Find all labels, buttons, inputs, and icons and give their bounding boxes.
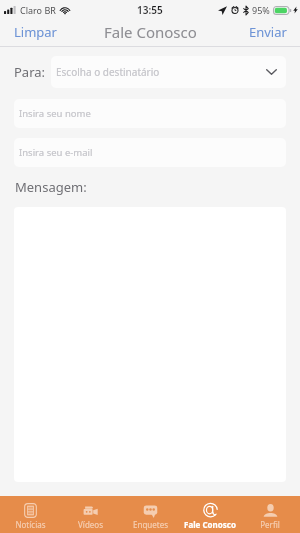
- staticText: Mensagem:: [15, 178, 87, 196]
- staticText: 95%: [252, 4, 270, 16]
- staticText: Notícias: [15, 519, 46, 530]
- staticText: Limpar: [14, 23, 57, 41]
- other: Expand recipient list: [266, 69, 277, 75]
- button[interactable]: Enquetes: [120, 496, 180, 533]
- staticText: Fale Conosco: [184, 519, 236, 530]
- staticText: Claro BR: [20, 4, 56, 16]
- staticText: Insira seu nome: [19, 107, 91, 120]
- button[interactable]: Notícias: [0, 496, 60, 533]
- staticText: Enquetes: [133, 519, 168, 530]
- button[interactable]: Limpar: [0, 19, 71, 45]
- staticText: Enviar: [249, 23, 287, 41]
- staticText: Fale Conosco: [104, 22, 197, 42]
- button[interactable]: Escolha o destinatário: [51, 56, 286, 88]
- button[interactable]: Insira seu e-mail: [14, 138, 286, 167]
- button[interactable]: Insira seu nome: [14, 99, 286, 128]
- button[interactable]: Vídeos: [60, 496, 120, 533]
- staticText: Insira seu e-mail: [19, 146, 93, 159]
- button[interactable]: Fale Conosco: [180, 496, 240, 533]
- staticText: Vídeos: [78, 519, 103, 530]
- button[interactable]: Enviar: [236, 19, 300, 45]
- staticText: 13:55: [137, 3, 163, 17]
- staticText: Para:: [14, 63, 46, 81]
- staticText: Escolha o destinatário: [56, 65, 160, 79]
- staticText: Perfil: [260, 519, 280, 530]
- button[interactable]: Perfil: [240, 496, 300, 533]
